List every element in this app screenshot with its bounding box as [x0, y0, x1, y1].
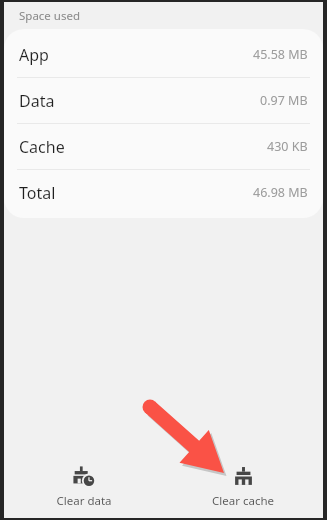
staticText: Clear data — [56, 493, 112, 509]
button[interactable]: Clear cache — [163, 461, 323, 514]
staticText: Space used — [19, 8, 81, 24]
button[interactable]: Clear data — [4, 461, 163, 514]
staticText: Clear cache — [212, 493, 274, 509]
button[interactable]: Cache — [4, 124, 323, 169]
button[interactable]: Total — [4, 170, 323, 215]
staticText: 45.58 MB — [253, 46, 308, 63]
staticText: Cache — [19, 136, 65, 158]
staticText: 0.97 MB — [260, 92, 308, 109]
button[interactable]: App — [4, 32, 323, 77]
staticText: Data — [19, 90, 55, 112]
staticText: Total — [19, 182, 56, 204]
button[interactable]: Data — [4, 78, 323, 123]
staticText: 46.98 MB — [253, 184, 308, 201]
staticText: App — [19, 44, 49, 66]
staticText: 430 KB — [267, 138, 308, 155]
